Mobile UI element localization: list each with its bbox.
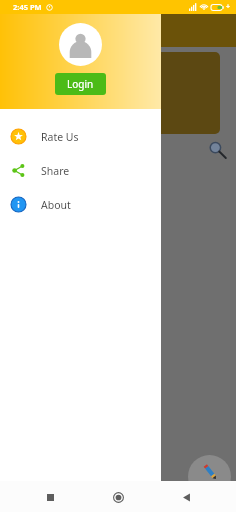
button[interactable]: Profile photo (59, 23, 102, 66)
staticText: + (226, 2, 231, 12)
button[interactable]: Home (103, 482, 133, 512)
button[interactable]: Recents (35, 482, 65, 512)
button[interactable]: Share (0, 154, 161, 187)
button[interactable]: Back (171, 482, 201, 512)
staticText: 2:45 PM (13, 2, 42, 12)
staticText: Rate Us (41, 130, 79, 144)
staticText: About (41, 198, 71, 212)
staticText: Share (41, 164, 70, 178)
staticText: Login (67, 77, 94, 91)
button[interactable]: Search (207, 140, 227, 160)
button[interactable]: Create (188, 455, 231, 498)
button[interactable]: Login (55, 73, 106, 95)
button[interactable]: Rate Us (0, 120, 161, 153)
button[interactable]: About (0, 188, 161, 221)
